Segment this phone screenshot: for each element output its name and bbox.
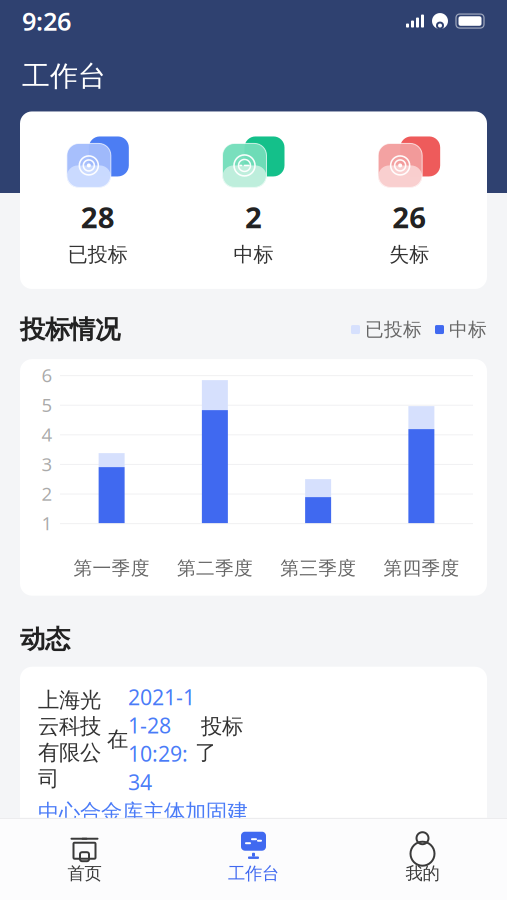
staticText: 1 [41, 511, 52, 535]
staticText: 2021-11-28 10:29:34 [128, 683, 195, 796]
staticText: 第一季度 [74, 557, 150, 580]
button[interactable]: 上海光云科技有限公司 [20, 667, 487, 900]
staticText: 9:26 [22, 4, 71, 38]
button[interactable]: 28 [20, 129, 176, 271]
staticText: 第二季度 [177, 557, 253, 580]
button[interactable]: 工作台 [169, 825, 338, 890]
staticText: 工作台 [22, 59, 106, 93]
staticText: 4 [41, 422, 52, 447]
staticText: 中心合金库主体加固建筑和屋面相关工程招标公告 [38, 799, 248, 878]
staticText: 中标 [233, 242, 273, 267]
staticText: 我的 [405, 863, 439, 884]
staticText: 2 [245, 197, 262, 236]
staticText: 26 [392, 197, 426, 236]
button[interactable]: 2 [176, 129, 331, 271]
staticText: 失标 [389, 242, 429, 267]
staticText: 6 [41, 363, 52, 387]
button[interactable]: 我的 [338, 825, 507, 890]
staticText: 投标了 [195, 713, 243, 766]
staticText: 第三季度 [280, 557, 356, 580]
staticText: 5 [41, 392, 52, 417]
staticText: 中标 [449, 318, 487, 341]
staticText: 3 [41, 451, 52, 476]
staticText: 上海光云科技有限公司 [38, 687, 101, 792]
button[interactable]: 首页 [0, 825, 169, 890]
staticText: 首页 [67, 863, 101, 884]
staticText: 已投标 [365, 318, 422, 341]
staticText: 在 [101, 726, 128, 752]
staticText: 已投标 [68, 242, 128, 267]
staticText: 2 [41, 481, 52, 506]
staticText: 第四季度 [383, 557, 459, 580]
staticText: 工作台 [228, 863, 279, 884]
button[interactable]: 26 [331, 129, 487, 271]
staticText: 投标情况 [20, 314, 120, 345]
staticText: 28 [81, 197, 115, 236]
staticText: 动态 [20, 624, 70, 655]
